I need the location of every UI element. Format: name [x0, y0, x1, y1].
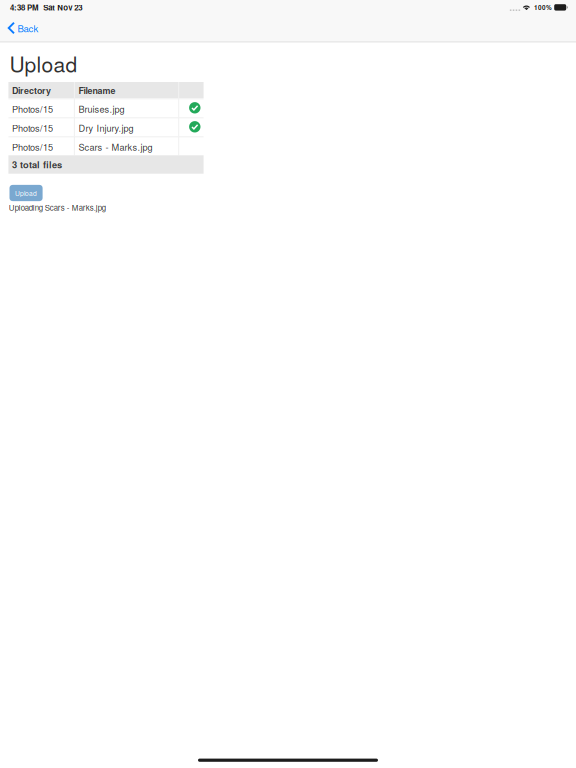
button[interactable]: Back: [0, 17, 56, 39]
staticText: Filename: [78, 84, 115, 97]
staticText: Back: [17, 21, 38, 35]
button[interactable]: Upload: [9, 185, 43, 201]
staticText: Sat Nov 23: [43, 2, 82, 13]
staticText: Photos/15: [12, 121, 53, 134]
staticText: Scars - Marks.jpg: [78, 140, 152, 153]
staticText: Uploading Scars - Marks.jpg: [9, 202, 106, 213]
staticText: 4:38 PM: [10, 2, 39, 13]
staticText: 100%: [534, 3, 552, 12]
staticText: 3 total files: [12, 158, 62, 171]
staticText: Bruises.jpg: [78, 102, 124, 115]
staticText: Dry Injury.jpg: [78, 121, 133, 134]
staticText: Upload: [15, 188, 37, 198]
staticText: Photos/15: [12, 102, 53, 115]
staticText: Directory: [12, 84, 51, 97]
staticText: Upload: [10, 48, 78, 78]
staticText: Photos/15: [12, 140, 53, 153]
